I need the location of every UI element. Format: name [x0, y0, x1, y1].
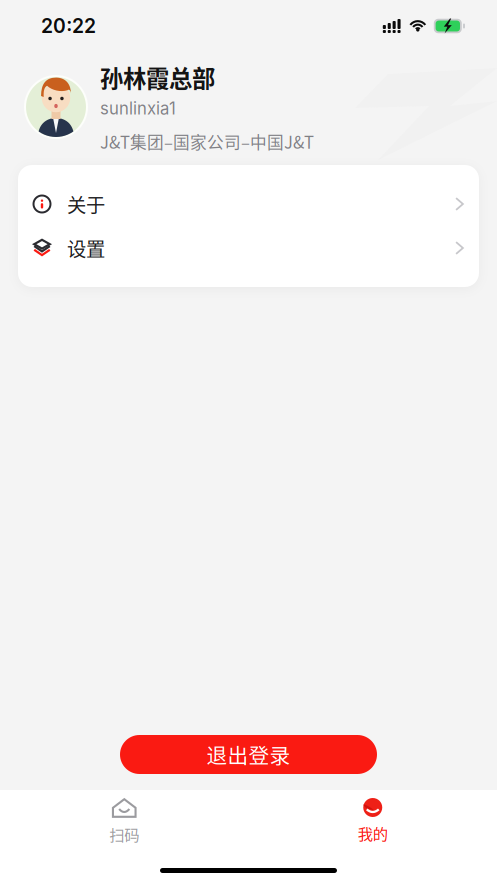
staticText: 设置 [67, 234, 105, 262]
button[interactable]: 设置 [18, 226, 479, 270]
staticText: 我的 [358, 822, 388, 844]
button[interactable]: 孙林霞总部 [0, 64, 497, 150]
staticText: 20:22 [41, 14, 96, 38]
button[interactable]: 退出登录 [120, 735, 377, 774]
button[interactable]: 关于 [18, 182, 479, 226]
button[interactable]: 我的 [248, 790, 497, 846]
staticText: 孙林霞总部 [100, 60, 215, 94]
staticText: 退出登录 [206, 739, 290, 769]
button[interactable]: 扫码 [0, 790, 248, 846]
staticText: 扫码 [109, 823, 139, 845]
staticText: J&T集团–国家公司–中国J&T [100, 129, 314, 153]
staticText: 关于 [67, 190, 105, 218]
staticText: sunlinxia1 [100, 98, 176, 118]
